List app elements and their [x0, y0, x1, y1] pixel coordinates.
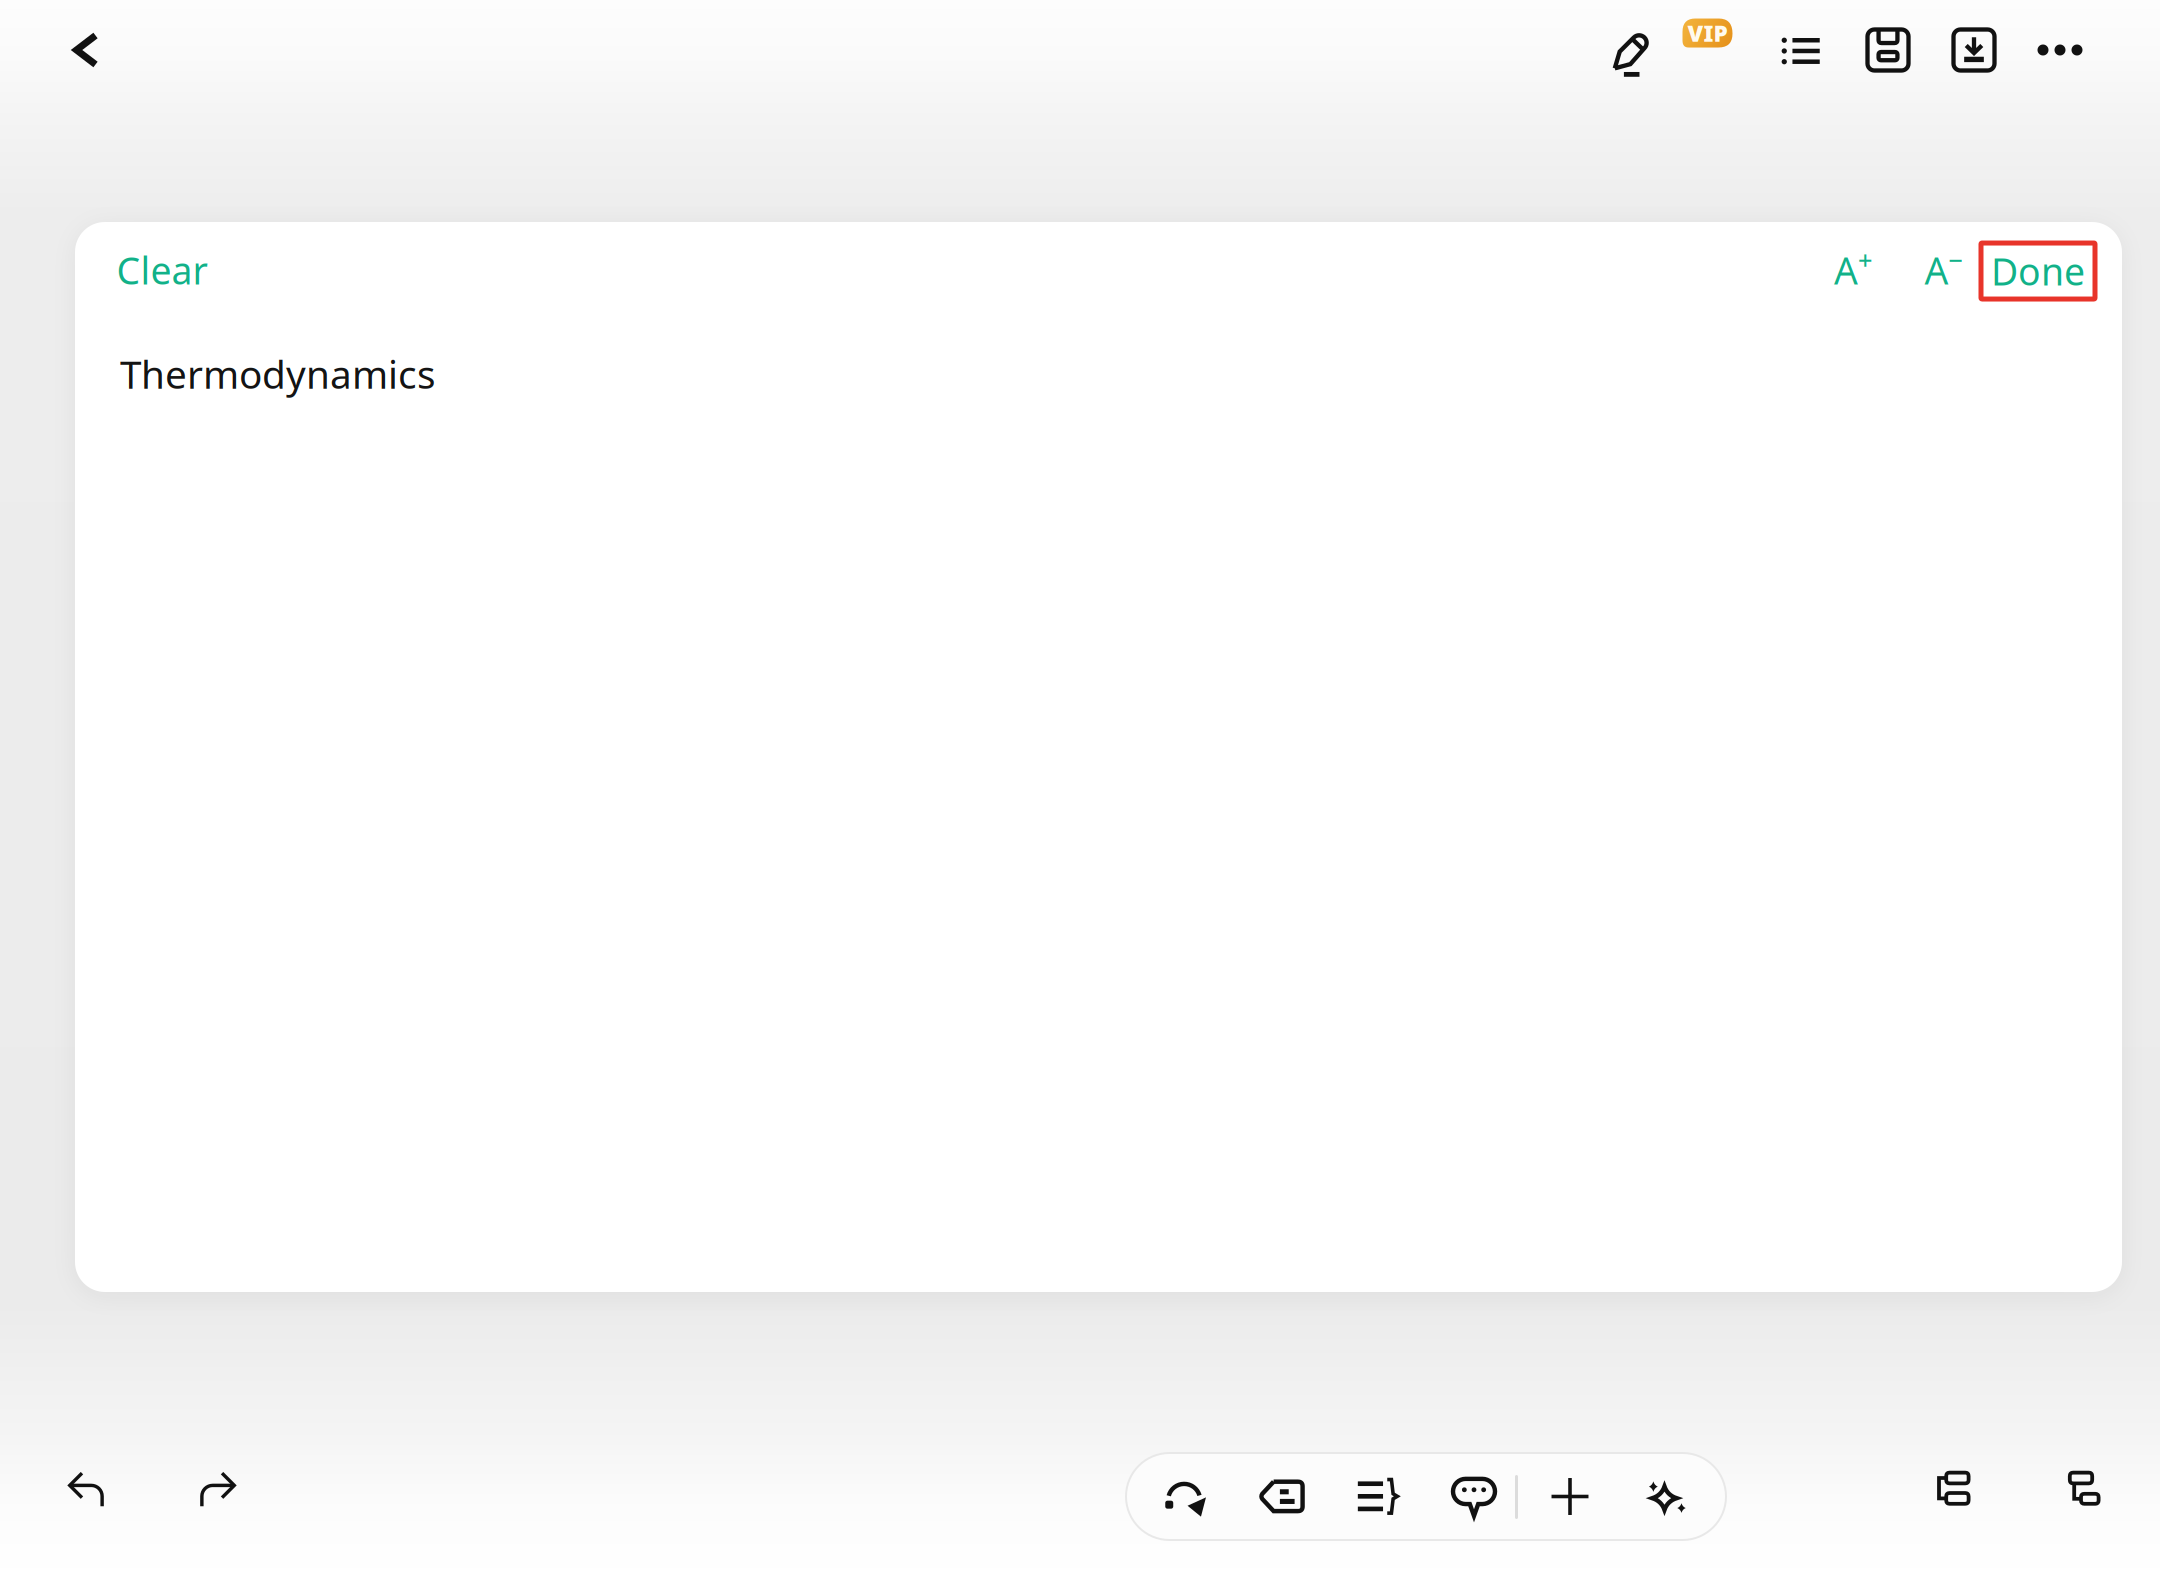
staticText: VIP	[1687, 18, 1727, 48]
button[interactable]: Outline	[1759, 2, 1845, 98]
button[interactable]: Tag	[1236, 1453, 1328, 1540]
button[interactable]: Clear	[110, 241, 214, 299]
button[interactable]: Comment	[1428, 1453, 1520, 1540]
staticText: Thermodynamics	[120, 348, 436, 399]
button[interactable]: Add	[1524, 1453, 1616, 1540]
button[interactable]: Export	[1931, 2, 2017, 98]
button[interactable]: Outline view	[1905, 1443, 1997, 1535]
button[interactable]: More	[2017, 2, 2103, 98]
button[interactable]: Done	[1981, 243, 2095, 299]
button[interactable]: Decrease text size	[1913, 241, 1975, 299]
button[interactable]: Redo	[171, 1443, 263, 1535]
button[interactable]: Increase text size	[1822, 241, 1884, 299]
button[interactable]: Mind map view	[2035, 1443, 2127, 1535]
button[interactable]: Rewrite	[1139, 1453, 1231, 1540]
button[interactable]: Summarize	[1332, 1453, 1424, 1540]
button[interactable]: Handwriting, VIP	[1581, 2, 1726, 98]
button[interactable]: AI	[1621, 1453, 1713, 1540]
button[interactable]: Back	[38, 2, 134, 98]
staticText: A	[1924, 245, 1948, 295]
button[interactable]: Undo	[41, 1443, 133, 1535]
staticText: +	[1858, 243, 1872, 277]
staticText: −	[1948, 243, 1963, 277]
button[interactable]: Save	[1845, 2, 1931, 98]
staticText: Done	[1991, 246, 2085, 296]
staticText: Clear	[116, 245, 207, 295]
staticText: A	[1834, 245, 1858, 295]
